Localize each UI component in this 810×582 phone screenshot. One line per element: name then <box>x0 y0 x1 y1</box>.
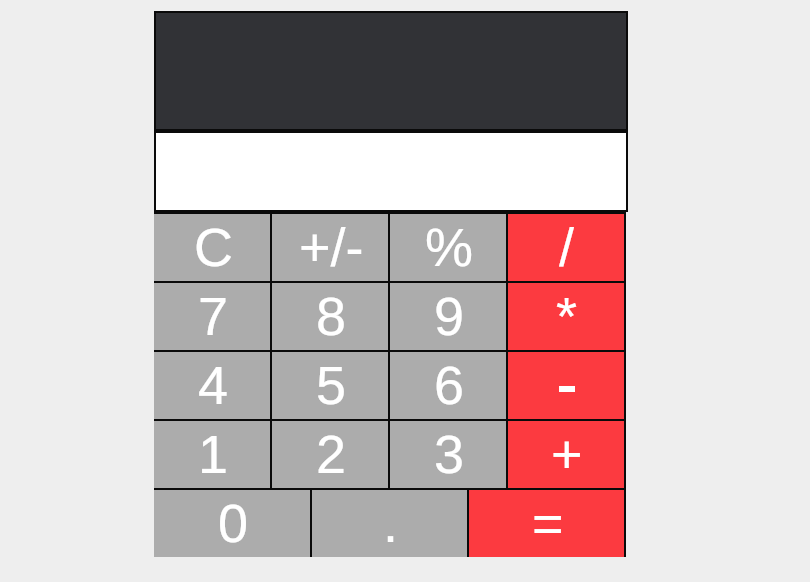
button[interactable]: = <box>469 488 626 557</box>
button[interactable]: 4 <box>154 350 272 419</box>
staticText: / <box>559 217 575 277</box>
button[interactable]: * <box>508 281 626 350</box>
staticText: 5 <box>316 355 347 415</box>
staticText: . <box>383 493 399 553</box>
button[interactable]: 5 <box>272 350 390 419</box>
button[interactable]: / <box>508 212 626 281</box>
staticText: 3 <box>434 424 465 484</box>
staticText: + <box>551 424 583 484</box>
staticText: 0 <box>218 493 249 553</box>
button[interactable]: 1 <box>154 419 272 488</box>
button[interactable]: . <box>312 488 469 557</box>
button[interactable]: 8 <box>272 281 390 350</box>
button[interactable]: 6 <box>390 350 508 419</box>
button[interactable]: 3 <box>390 419 508 488</box>
button[interactable]: % <box>390 212 508 281</box>
button[interactable]: +/- <box>272 212 390 281</box>
button[interactable]: 2 <box>272 419 390 488</box>
staticText: % <box>425 217 474 277</box>
button[interactable] <box>508 350 626 419</box>
staticText: 6 <box>434 355 465 415</box>
button[interactable]: 0 <box>154 488 312 557</box>
staticText: +/- <box>299 217 364 277</box>
staticText: 2 <box>316 424 347 484</box>
staticText: = <box>532 493 564 553</box>
button[interactable]: + <box>508 419 626 488</box>
button[interactable]: 9 <box>390 281 508 350</box>
staticText: 8 <box>316 286 347 346</box>
staticText: 7 <box>198 286 229 346</box>
staticText: 1 <box>198 424 229 484</box>
button[interactable]: 7 <box>154 281 272 350</box>
staticText: 4 <box>198 355 229 415</box>
staticText: 9 <box>434 286 465 346</box>
button[interactable]: C <box>154 212 272 281</box>
staticText: C <box>194 217 233 277</box>
staticText: * <box>556 286 578 346</box>
